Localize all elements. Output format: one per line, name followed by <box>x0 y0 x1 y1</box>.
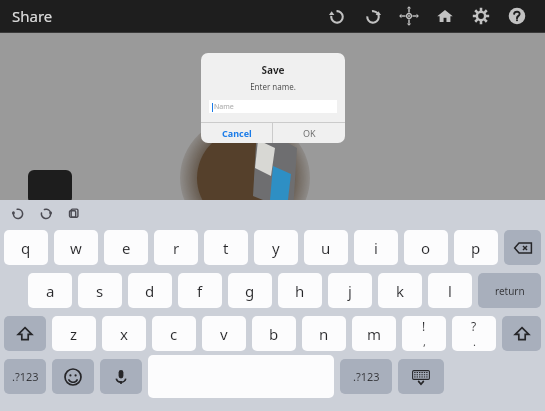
staticText: j <box>348 281 352 301</box>
button[interactable]: w <box>54 230 98 265</box>
staticText: Name <box>214 102 234 112</box>
staticText: t <box>223 238 229 258</box>
staticText: y <box>272 238 280 258</box>
staticText: return <box>495 284 525 298</box>
button[interactable]: Paste <box>64 203 84 223</box>
button[interactable]: f <box>178 273 222 308</box>
button[interactable]: Undo <box>8 203 28 223</box>
staticText: c <box>170 324 178 344</box>
button[interactable]: Backspace <box>504 230 541 265</box>
button[interactable]: ! <box>402 316 446 351</box>
button[interactable]: Name <box>209 100 337 113</box>
button[interactable]: z <box>52 316 96 351</box>
staticText: Cancel <box>222 127 252 139</box>
staticText: OK <box>303 127 316 139</box>
button[interactable]: m <box>352 316 396 351</box>
button[interactable]: .?123 <box>4 359 46 394</box>
button[interactable]: k <box>378 273 422 308</box>
button[interactable]: Tool <box>28 170 72 204</box>
button[interactable]: e <box>104 230 148 265</box>
button[interactable]: c <box>152 316 196 351</box>
button[interactable]: Cancel <box>201 123 272 143</box>
staticText: p <box>471 238 481 258</box>
button[interactable]: y <box>254 230 298 265</box>
button[interactable]: p <box>454 230 498 265</box>
staticText: .?123 <box>12 369 39 384</box>
staticText: v <box>220 324 228 344</box>
staticText: h <box>295 281 305 301</box>
staticText: g <box>245 281 255 301</box>
button[interactable]: s <box>78 273 122 308</box>
button[interactable]: v <box>202 316 246 351</box>
staticText: k <box>396 281 405 301</box>
button[interactable]: Shift <box>4 316 46 351</box>
staticText: w <box>70 238 82 258</box>
staticText: m <box>367 324 382 344</box>
button[interactable]: ? <box>452 316 496 351</box>
button[interactable]: l <box>428 273 472 308</box>
button[interactable]: Help <box>499 0 535 32</box>
button[interactable]: d <box>128 273 172 308</box>
staticText: .?123 <box>353 369 380 384</box>
button[interactable]: o <box>404 230 448 265</box>
button[interactable]: i <box>354 230 398 265</box>
button[interactable]: Shift <box>502 316 541 351</box>
staticText: x <box>120 324 128 344</box>
button[interactable]: Voice input <box>100 359 142 394</box>
staticText: z <box>70 324 78 344</box>
button[interactable]: b <box>252 316 296 351</box>
button[interactable]: j <box>328 273 372 308</box>
button[interactable]: g <box>228 273 272 308</box>
button[interactable]: r <box>154 230 198 265</box>
staticText: e <box>122 238 131 258</box>
staticText: d <box>145 281 155 301</box>
button[interactable]: .?123 <box>340 359 392 394</box>
staticText: Share <box>12 6 53 26</box>
button[interactable]: Undo <box>319 0 355 32</box>
button[interactable]: q <box>4 230 48 265</box>
button[interactable]: Hide keyboard <box>398 359 444 394</box>
staticText: o <box>421 238 431 258</box>
button[interactable]: OK <box>273 123 345 143</box>
staticText: u <box>321 238 331 258</box>
button[interactable]: Settings <box>463 0 499 32</box>
button[interactable]: Emoji <box>52 359 94 394</box>
staticText: s <box>96 281 104 301</box>
button[interactable]: Redo <box>355 0 391 32</box>
staticText: r <box>173 238 180 258</box>
staticText: . <box>473 334 476 349</box>
staticText: b <box>269 324 279 344</box>
button[interactable]: Move <box>391 0 427 32</box>
button[interactable]: n <box>302 316 346 351</box>
button[interactable]: a <box>28 273 72 308</box>
staticText: ? <box>471 318 477 334</box>
staticText: i <box>374 238 378 258</box>
staticText: q <box>21 238 31 258</box>
button[interactable]: Home <box>427 0 463 32</box>
staticText: l <box>448 281 452 301</box>
staticText: a <box>46 281 55 301</box>
staticText: Enter name. <box>201 81 345 92</box>
button[interactable]: x <box>102 316 146 351</box>
staticText: n <box>319 324 329 344</box>
staticText: Save <box>201 63 345 77</box>
button[interactable]: u <box>304 230 348 265</box>
staticText: , <box>423 334 426 349</box>
button[interactable]: t <box>204 230 248 265</box>
button[interactable]: Redo <box>36 203 56 223</box>
button[interactable]: Return <box>478 273 541 308</box>
button[interactable]: h <box>278 273 322 308</box>
staticText: ! <box>422 318 426 334</box>
staticText: f <box>197 281 203 301</box>
